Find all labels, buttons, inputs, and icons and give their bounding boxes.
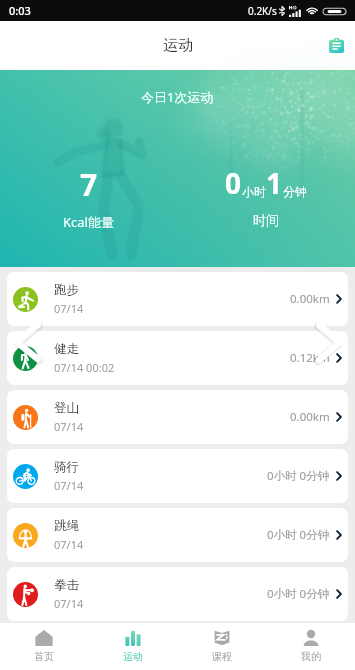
button[interactable]: 课程 bbox=[177, 623, 266, 670]
staticText: 运动 bbox=[163, 36, 193, 55]
staticText: 0 bbox=[225, 164, 242, 202]
button[interactable]: 运动 bbox=[88, 623, 177, 670]
button[interactable]: 我的 bbox=[266, 623, 355, 670]
staticText: 07/14 00:02 bbox=[54, 360, 115, 375]
button[interactable]: 跑步 bbox=[7, 272, 348, 326]
button[interactable]: 跳绳 bbox=[7, 508, 348, 562]
staticText: 我的 bbox=[301, 650, 321, 663]
button[interactable]: 骑行 bbox=[7, 449, 348, 503]
staticText: 今日1次运动 bbox=[141, 88, 214, 106]
staticText: 0:03 bbox=[9, 3, 31, 18]
staticText: 0小时 0分钟 bbox=[267, 527, 330, 543]
button[interactable]: 拳击 bbox=[7, 567, 348, 621]
staticText: 0小时 0分钟 bbox=[267, 586, 330, 602]
staticText: Kcal能量 bbox=[63, 213, 114, 231]
staticText: 登山 bbox=[54, 400, 79, 416]
staticText: 07/14 bbox=[54, 301, 84, 316]
button[interactable]: 登山 bbox=[7, 390, 348, 444]
staticText: 07/14 bbox=[54, 596, 84, 611]
staticText: 小时 bbox=[242, 184, 266, 199]
staticText: 跑步 bbox=[54, 282, 79, 298]
staticText: 分钟 bbox=[283, 184, 307, 199]
button[interactable]: 健走 bbox=[7, 331, 348, 385]
staticText: 07/14 bbox=[54, 537, 84, 552]
button[interactable]: 首页 bbox=[0, 623, 88, 670]
staticText: 0小时 0分钟 bbox=[267, 468, 330, 484]
staticText: 跳绳 bbox=[54, 518, 79, 534]
staticText: 运动 bbox=[123, 650, 143, 663]
staticText: 07/14 bbox=[54, 478, 84, 493]
staticText: 首页 bbox=[34, 650, 54, 663]
button[interactable]: Records bbox=[329, 38, 344, 53]
staticText: 0.12km bbox=[290, 350, 330, 366]
staticText: 1 bbox=[266, 164, 283, 202]
staticText: 课程 bbox=[212, 650, 232, 663]
staticText: 0.00km bbox=[290, 291, 330, 307]
staticText: 拳击 bbox=[54, 577, 79, 593]
staticText: 0.00km bbox=[290, 409, 330, 425]
staticText: 07/14 bbox=[54, 419, 84, 434]
staticText: 时间 bbox=[253, 212, 279, 228]
staticText: 健走 bbox=[54, 341, 79, 357]
staticText: 0.2K/s bbox=[248, 4, 277, 18]
staticText: 骑行 bbox=[54, 459, 79, 475]
staticText: 7 bbox=[80, 164, 98, 205]
